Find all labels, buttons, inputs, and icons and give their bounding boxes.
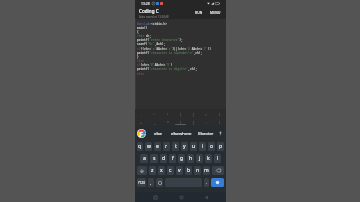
staticText: { [137, 30, 139, 34]
staticText: printf("character is alphabet\n",ch); [137, 51, 203, 55]
button[interactable]: a [140, 154, 148, 163]
staticText: b [187, 167, 191, 174]
staticText: f [172, 155, 174, 162]
button[interactable]: Backspace [212, 166, 224, 175]
button[interactable]: Home [176, 192, 186, 202]
button[interactable]: p [217, 142, 224, 151]
button[interactable]: ! [161, 110, 174, 118]
button[interactable]: ( [213, 110, 226, 118]
button[interactable]: q [137, 142, 143, 151]
button[interactable]: h [187, 154, 194, 163]
button[interactable]: RUN [193, 9, 205, 17]
staticText: main() [137, 26, 148, 30]
button[interactable]: j [196, 154, 203, 163]
staticText: z [151, 167, 154, 174]
staticText: _ [154, 120, 156, 125]
staticText: a [143, 155, 146, 162]
staticText: RUN [195, 11, 203, 15]
button[interactable]: l [214, 154, 221, 163]
staticText: char ch; [137, 34, 152, 38]
button[interactable]: Enter [211, 178, 224, 187]
button[interactable]: { [174, 110, 187, 118]
staticText: Elsevier [198, 130, 214, 136]
button[interactable]: v [176, 166, 183, 175]
button[interactable]: t [172, 142, 179, 151]
button[interactable]: Emoji [156, 178, 163, 187]
button[interactable]: z [149, 166, 156, 175]
button[interactable]: e [154, 142, 161, 151]
staticText: { [180, 112, 182, 117]
staticText: else [137, 72, 145, 76]
button[interactable]: * [161, 118, 174, 126]
staticText: Auto saved at 13:28:48 [139, 15, 169, 19]
button[interactable]: Elsevier [194, 130, 217, 136]
staticText: if(ch>='0'&&ch<='9') [137, 63, 173, 67]
staticText: else [154, 130, 163, 136]
staticText: p [219, 143, 223, 150]
staticText: = [205, 112, 208, 117]
button[interactable]: Voice input [218, 131, 223, 136]
staticText: c [169, 167, 172, 174]
button[interactable]: [ [187, 110, 200, 118]
staticText: + [140, 120, 143, 125]
button[interactable]: Recents [150, 192, 160, 202]
button[interactable]: c [167, 166, 174, 175]
staticText: w [147, 143, 151, 150]
staticText: h [189, 155, 193, 162]
button[interactable]: ) [213, 118, 226, 126]
button[interactable]: o [208, 142, 215, 151]
staticText: 13:28 [141, 1, 150, 6]
staticText: printf("enter character"); [137, 38, 183, 42]
button[interactable]: s [150, 154, 158, 163]
button[interactable]: i [199, 142, 206, 151]
button[interactable]: d [160, 154, 167, 163]
staticText: - [141, 112, 143, 117]
staticText: ~ [153, 112, 156, 117]
button[interactable]: Google [137, 129, 146, 138]
button[interactable]: n [194, 166, 201, 175]
button[interactable]: MENU [208, 9, 223, 17]
button[interactable]: m [203, 166, 210, 175]
button[interactable]: k [205, 154, 212, 163]
staticText: ] [193, 120, 195, 125]
button[interactable]: g [178, 154, 185, 163]
staticText: u [192, 143, 196, 150]
staticText: MENU [210, 11, 221, 15]
button[interactable]: u [190, 142, 197, 151]
staticText: printf("character is digit\n",ch); [137, 67, 197, 71]
staticText: s [153, 155, 156, 162]
staticText: l [217, 155, 219, 162]
button[interactable]: r [163, 142, 170, 151]
staticText: * [167, 120, 169, 125]
button[interactable]: ?123 [137, 178, 146, 187]
staticText: n [196, 167, 200, 174]
button[interactable]: y [181, 142, 188, 151]
staticText: #include<stdio.h> [137, 22, 167, 26]
staticText: j [199, 155, 201, 162]
button[interactable]: f [169, 154, 176, 163]
button[interactable]: , [148, 178, 154, 187]
button[interactable]: ] [187, 118, 200, 126]
staticText: i [202, 143, 204, 150]
button[interactable]: else [148, 130, 168, 136]
button[interactable]: } [174, 118, 187, 126]
button[interactable]: Shift [137, 166, 147, 175]
button[interactable]: elsewhere [168, 130, 194, 136]
staticText: e [156, 143, 159, 150]
staticText: x [160, 167, 163, 174]
staticText: } [137, 55, 139, 59]
button[interactable]: Back [201, 192, 211, 202]
button[interactable]: + [135, 118, 148, 126]
button[interactable]: . [204, 178, 209, 187]
button[interactable]: w [145, 142, 152, 151]
button[interactable]: x [158, 166, 165, 175]
button[interactable]: b [185, 166, 192, 175]
staticText: : [206, 120, 207, 125]
staticText: y [183, 143, 186, 150]
